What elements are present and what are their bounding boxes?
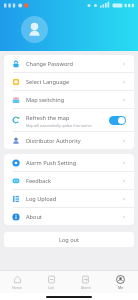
button[interactable]: Log out [4,232,134,247]
staticText: About [26,213,42,221]
button[interactable]: Home [0,271,34,293]
button[interactable]: Change Password [4,55,134,72]
staticText: Refresh the map [26,114,70,122]
button[interactable]: List [34,271,68,293]
button[interactable]: Map switching [4,91,134,108]
button[interactable]: Alarm Push Setting [4,154,134,171]
button[interactable]: Distributor Authority [4,132,134,149]
staticText: Map switching [26,96,65,104]
staticText: Alarm Push Setting [26,159,77,167]
button[interactable]: Refresh the map [4,109,134,131]
staticText: Home [12,285,22,290]
button[interactable]: Select Language [4,73,134,90]
staticText: Alarm [81,285,91,290]
staticText: List [48,285,54,290]
staticText: Map will automatically update if turned … [26,123,92,127]
staticText: Log Upload [26,195,57,203]
button[interactable]: Refresh the map toggle [109,116,126,125]
button[interactable]: About [4,208,134,225]
staticText: Feedback [26,177,51,185]
button[interactable]: Alarm [68,271,103,293]
staticText: Me [118,285,124,290]
button[interactable]: Profile avatar [21,16,48,43]
button[interactable]: Feedback [4,172,134,189]
staticText: Select Language [26,78,70,86]
staticText: Distributor Authority [26,137,81,145]
staticText: Change Password [26,60,73,68]
button[interactable]: Me [103,271,138,293]
button[interactable]: Log Upload [4,190,134,207]
staticText: Log out [59,236,80,244]
